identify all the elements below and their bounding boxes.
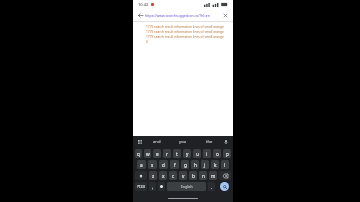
button[interactable]: Backspace [219, 171, 231, 180]
staticText: 10:42 [138, 2, 149, 7]
staticText: y [186, 151, 189, 157]
staticText: a [140, 162, 143, 168]
button[interactable]: w [144, 149, 151, 158]
button[interactable]: Comma [149, 182, 156, 191]
button[interactable]: ?123 [135, 182, 147, 191]
button[interactable]: l [221, 160, 229, 169]
button[interactable]: f [170, 160, 179, 169]
staticText: b [192, 173, 195, 179]
staticText: p [226, 151, 229, 157]
staticText: ?123 [137, 184, 145, 189]
staticText: j [204, 162, 206, 168]
button[interactable]: e [153, 149, 161, 158]
staticText: v [182, 173, 185, 179]
staticText: n [202, 173, 205, 179]
button[interactable]: s [148, 160, 157, 169]
button[interactable]: and [144, 136, 170, 147]
staticText: o [216, 151, 219, 157]
button[interactable]: b [189, 171, 197, 180]
button[interactable]: g [181, 160, 189, 169]
staticText: m [211, 173, 216, 179]
staticText: i [206, 151, 208, 157]
button[interactable]: u [193, 149, 201, 158]
staticText: 1775 search result information lines of … [146, 25, 225, 29]
button[interactable]: Period [208, 182, 215, 191]
staticText: l [224, 162, 226, 168]
staticText: f [174, 162, 176, 168]
button[interactable]: https://www.searchsuggestion.co/?hl=en [145, 13, 221, 18]
staticText: English [181, 184, 193, 189]
button[interactable]: the [196, 136, 222, 147]
button[interactable]: y [183, 149, 191, 158]
button[interactable]: p [223, 149, 231, 158]
staticText: and [153, 139, 161, 145]
staticText: you [179, 139, 187, 145]
button[interactable]: Keyboard toolbar [136, 138, 144, 146]
button[interactable]: x [159, 171, 167, 180]
staticText: r [166, 151, 168, 157]
button[interactable]: j [201, 160, 209, 169]
button[interactable]: n [199, 171, 207, 180]
button[interactable]: Clear [221, 11, 230, 20]
button[interactable]: v [179, 171, 187, 180]
button[interactable]: q [135, 149, 142, 158]
staticText: . [211, 184, 213, 190]
staticText: d [162, 162, 165, 168]
button[interactable]: a [137, 160, 146, 169]
staticText: 1775 search result information lines of … [146, 30, 225, 34]
button[interactable]: Emoji [158, 182, 165, 191]
button[interactable]: k [211, 160, 219, 169]
button[interactable]: h [191, 160, 199, 169]
staticText: x [162, 173, 165, 179]
button[interactable]: Shift [135, 171, 147, 180]
button[interactable]: m [209, 171, 217, 180]
button[interactable]: Search [220, 182, 229, 191]
button[interactable]: r [163, 149, 171, 158]
button[interactable]: Back [136, 11, 145, 20]
staticText: e [156, 151, 159, 157]
button[interactable]: d [159, 160, 168, 169]
staticText: u [196, 151, 199, 157]
staticText: z [152, 173, 155, 179]
button[interactable]: Voice input [222, 138, 230, 146]
staticText: s [151, 162, 154, 168]
staticText: k [214, 162, 217, 168]
button[interactable]: English [167, 182, 206, 191]
button[interactable]: i [203, 149, 211, 158]
staticText: t [176, 151, 178, 157]
button[interactable]: z [149, 171, 157, 180]
staticText: q [137, 151, 140, 157]
staticText: https://www.searchsuggestion.co/?hl=en [145, 13, 210, 18]
button[interactable]: c [169, 171, 177, 180]
button[interactable]: t [173, 149, 181, 158]
staticText: , [152, 184, 154, 190]
button[interactable]: you [170, 136, 196, 147]
staticText: 0 [146, 40, 148, 44]
staticText: g [184, 162, 187, 168]
staticText: c [172, 173, 175, 179]
staticText: 1775 search result information lines of … [146, 35, 225, 39]
button[interactable]: o [213, 149, 221, 158]
staticText: the [206, 139, 213, 145]
staticText: w [146, 151, 150, 157]
staticText: h [194, 162, 197, 168]
